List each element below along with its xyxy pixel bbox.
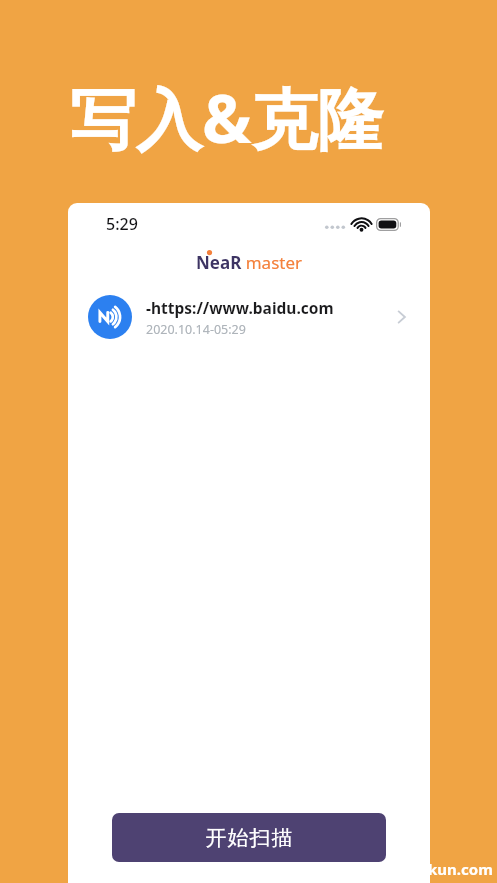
staticText: 5:29	[106, 213, 138, 235]
staticText: 写入&克隆	[70, 72, 384, 162]
staticText: www.pipikun.com	[358, 859, 493, 879]
staticText: NeaR master	[196, 251, 303, 274]
button[interactable]: 开始扫描	[112, 813, 386, 862]
staticText: 2020.10.14-05:29	[146, 321, 246, 338]
button[interactable]: NFC tag	[68, 289, 430, 345]
staticText: -https://www.baidu.com	[146, 297, 334, 318]
other: NFC tag	[88, 295, 132, 339]
staticText: 开始扫描	[205, 825, 293, 851]
